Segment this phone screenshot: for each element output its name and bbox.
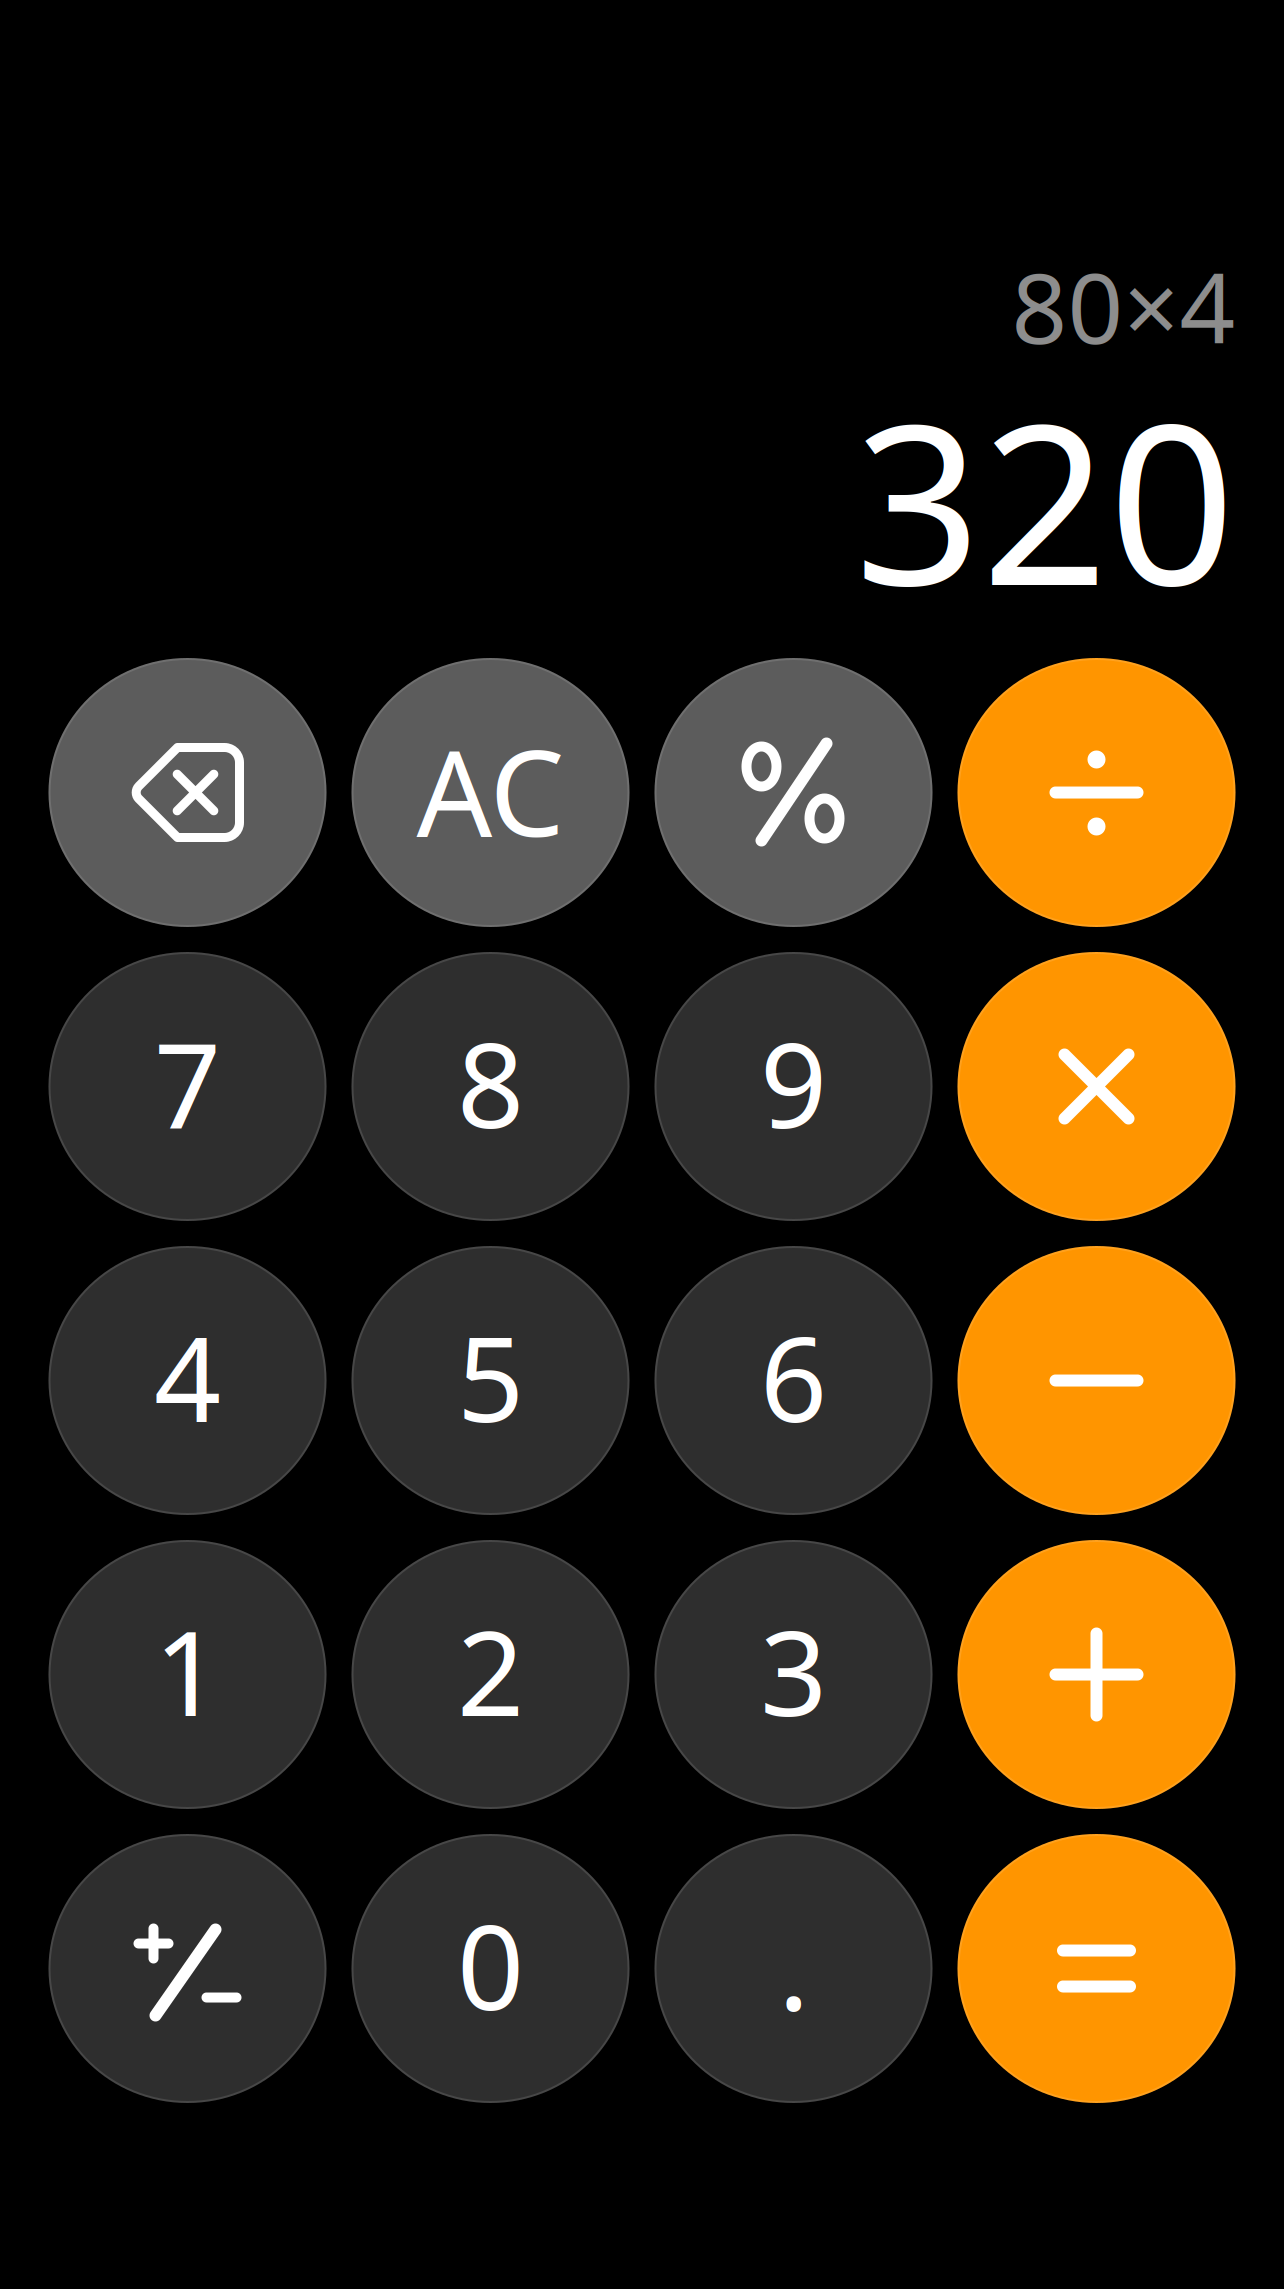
staticText: 4 (154, 1299, 221, 1454)
staticText: 7 (154, 1005, 221, 1160)
button[interactable]: Add (957, 1540, 1235, 1809)
button[interactable]: All Clear (351, 658, 629, 927)
staticText: . (778, 1887, 809, 2042)
staticText: 5 (457, 1299, 524, 1454)
button[interactable]: Plus Minus (48, 1834, 326, 2103)
staticText: 80×4 (1011, 241, 1235, 371)
button[interactable]: 7 (48, 952, 326, 1221)
button[interactable]: 0 (351, 1834, 629, 2103)
staticText: 8 (457, 1005, 524, 1160)
button[interactable]: 1 (48, 1540, 326, 1809)
button[interactable]: Subtract (957, 1246, 1235, 1515)
staticText: 6 (760, 1299, 827, 1454)
button[interactable]: 2 (351, 1540, 629, 1809)
staticText: 1 (154, 1593, 221, 1748)
button[interactable]: Delete (48, 658, 326, 927)
button[interactable]: 3 (654, 1540, 932, 1809)
button[interactable]: . (654, 1834, 932, 2103)
button[interactable]: 5 (351, 1246, 629, 1515)
staticText: 2 (457, 1593, 524, 1748)
staticText: AC (416, 712, 564, 869)
button[interactable]: 4 (48, 1246, 326, 1515)
button[interactable]: Equals (957, 1834, 1235, 2103)
button[interactable]: 9 (654, 952, 932, 1221)
button[interactable]: Divide (957, 658, 1235, 927)
button[interactable]: 8 (351, 952, 629, 1221)
button[interactable]: Multiply (957, 952, 1235, 1221)
staticText: 0 (457, 1887, 524, 2042)
button[interactable]: Percent (654, 658, 932, 927)
staticText: 320 (854, 352, 1235, 646)
staticText: 3 (760, 1593, 827, 1748)
staticText: 9 (760, 1005, 827, 1160)
button[interactable]: 6 (654, 1246, 932, 1515)
